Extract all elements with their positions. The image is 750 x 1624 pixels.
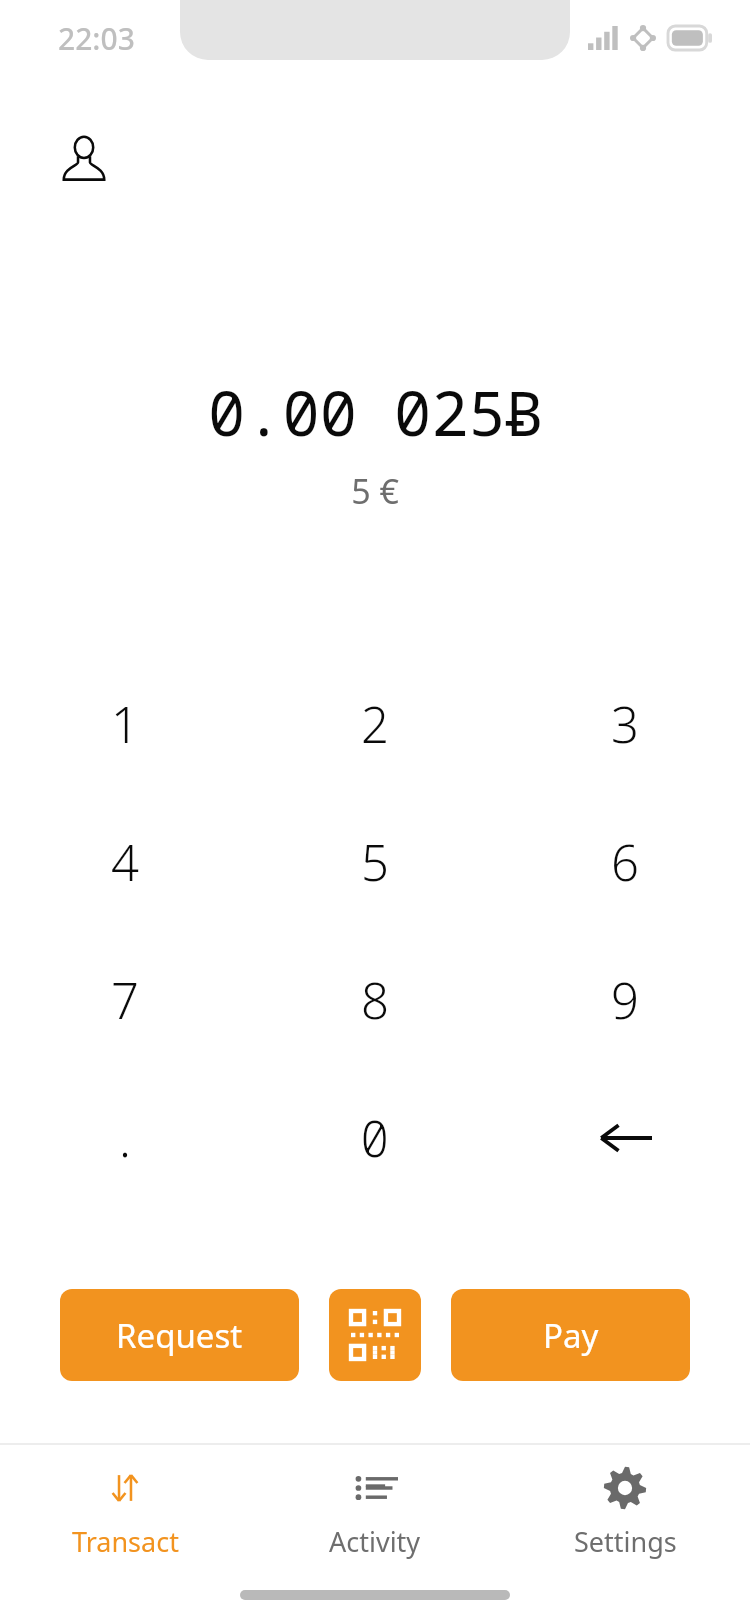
staticText: 3 — [611, 691, 639, 758]
button[interactable]: 4 — [0, 793, 250, 931]
button[interactable]: . — [0, 1069, 250, 1207]
button[interactable]: 5 — [250, 793, 500, 931]
button[interactable]: Request — [60, 1289, 299, 1381]
staticText: 5 — [361, 829, 389, 896]
button[interactable]: 8 — [250, 931, 500, 1069]
staticText: Request — [116, 1313, 243, 1358]
staticText: Activity — [329, 1523, 421, 1560]
button[interactable]: 9 — [500, 931, 750, 1069]
staticText: 5 € — [351, 468, 399, 514]
staticText: 9 — [611, 967, 639, 1034]
button[interactable]: 7 — [0, 931, 250, 1069]
staticText: 7 — [111, 967, 139, 1034]
staticText: Transact — [72, 1523, 179, 1560]
button[interactable]: Pay — [451, 1289, 690, 1381]
button[interactable] — [500, 1069, 750, 1207]
button[interactable]: Profile — [48, 126, 120, 190]
staticText: 6 — [611, 829, 639, 896]
staticText: 8 — [361, 967, 389, 1034]
staticText: 4 — [111, 829, 139, 896]
button[interactable]: 3 — [500, 655, 750, 793]
staticText: 0.00 025Ƀ — [208, 370, 543, 454]
staticText: 2 — [361, 691, 389, 758]
button[interactable]: Settings — [500, 1445, 750, 1580]
button[interactable]: 6 — [500, 793, 750, 931]
button[interactable]: Scan QR code — [329, 1289, 421, 1381]
button[interactable]: Activity — [250, 1445, 500, 1580]
button[interactable]: 1 — [0, 655, 250, 793]
staticText: Pay — [543, 1313, 599, 1358]
staticText: 1 — [111, 691, 139, 758]
staticText: 22:03 — [58, 18, 135, 59]
button[interactable]: 2 — [250, 655, 500, 793]
staticText: . — [119, 1105, 131, 1172]
button[interactable]: Transact — [0, 1445, 250, 1580]
button[interactable]: 0 — [250, 1069, 500, 1207]
staticText: 0 — [360, 1105, 390, 1172]
staticText: Settings — [574, 1523, 677, 1560]
